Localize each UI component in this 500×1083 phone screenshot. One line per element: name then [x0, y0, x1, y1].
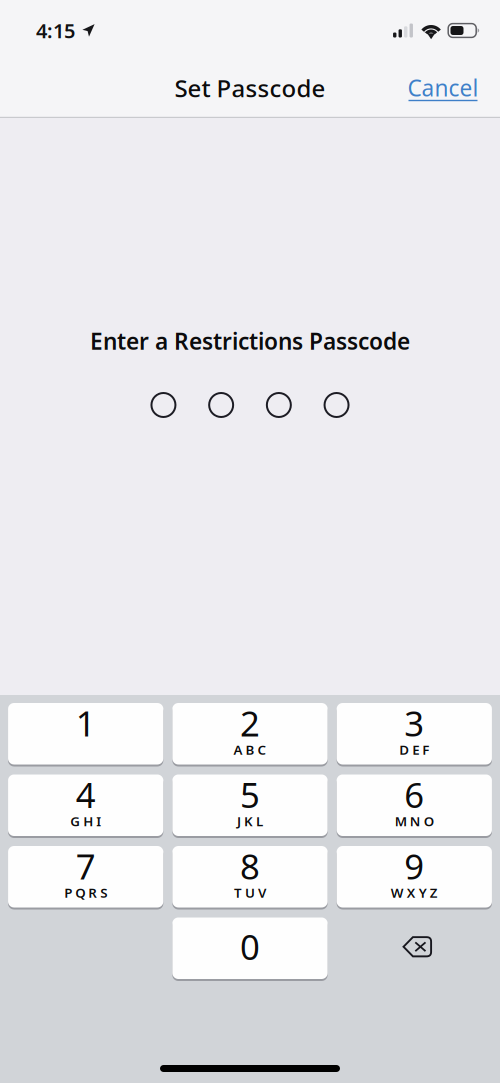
button[interactable]: 5 [172, 774, 328, 836]
button[interactable]: 3 [337, 703, 492, 764]
staticText: 3 [404, 700, 424, 746]
staticText: M N O [395, 812, 434, 830]
staticText: 6 [404, 771, 424, 817]
staticText: 2 [240, 700, 260, 746]
button[interactable]: Cancel [398, 64, 488, 108]
staticText: D E F [399, 741, 429, 758]
staticText: 8 [240, 843, 260, 889]
button[interactable]: 0 [172, 917, 328, 979]
staticText: 4:15 [36, 17, 75, 44]
button[interactable]: 1 [8, 703, 163, 764]
staticText: 5 [240, 771, 260, 817]
button[interactable]: 9 [337, 846, 492, 907]
staticText: Set Passcode [174, 72, 325, 104]
staticText: G H I [70, 812, 101, 830]
staticText: W X Y Z [391, 884, 438, 901]
staticText: 4 [76, 771, 96, 817]
staticText: 9 [404, 843, 424, 889]
staticText: Enter a Restrictions Passcode [90, 326, 410, 356]
staticText: P Q R S [64, 884, 107, 901]
staticText: A B C [233, 741, 266, 758]
staticText: J K L [237, 812, 263, 830]
staticText: 1 [76, 700, 96, 746]
button[interactable]: 7 [8, 846, 163, 907]
button[interactable]: Delete [337, 917, 492, 979]
staticText: Cancel [407, 73, 478, 103]
staticText: T U V [234, 884, 266, 901]
staticText: 7 [76, 843, 96, 889]
button[interactable]: 6 [337, 774, 492, 836]
button[interactable]: 8 [172, 846, 328, 907]
staticText: 0 [240, 923, 260, 969]
button[interactable]: 4 [8, 774, 163, 836]
button[interactable]: 2 [172, 703, 328, 764]
